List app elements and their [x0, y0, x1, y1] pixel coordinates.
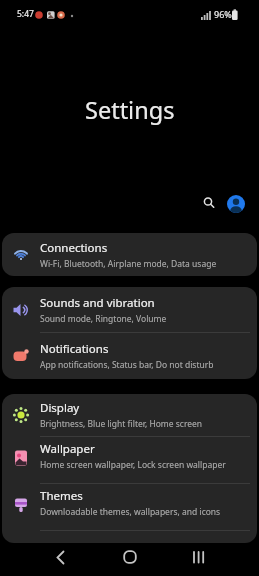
staticText: Notifications [40, 341, 109, 357]
staticText: Brightness, Blue light filter, Home scre… [40, 418, 203, 430]
staticText: App notifications, Status bar, Do not di… [40, 359, 214, 371]
button[interactable]: Sounds and vibration [2, 287, 257, 333]
staticText: Wi-Fi, Bluetooth, Airplane mode, Data us… [40, 258, 217, 270]
button[interactable] [190, 549, 208, 567]
staticText: Downloadable themes, wallpapers, and ico… [40, 506, 221, 518]
staticText: Connections [40, 240, 108, 256]
staticText: 96% [214, 8, 232, 20]
button[interactable]: Wallpaper [2, 436, 257, 483]
staticText: Sounds and vibration [40, 295, 155, 311]
staticText: Home screen wallpaper, Lock screen wallp… [40, 459, 226, 471]
button[interactable]: Display [2, 394, 257, 436]
staticText: 5:47 [17, 8, 34, 20]
button[interactable]: Connections [2, 233, 257, 276]
staticText: Sound mode, Ringtone, Volume [40, 313, 167, 325]
button[interactable] [50, 548, 70, 568]
button[interactable] [198, 192, 218, 212]
staticText: Display [40, 400, 80, 416]
staticText: Settings [85, 94, 175, 126]
staticText: Themes [40, 488, 83, 504]
button[interactable]: Notifications [2, 333, 257, 379]
button[interactable]: Themes [2, 483, 257, 530]
button[interactable] [227, 195, 245, 213]
button[interactable] [122, 549, 138, 565]
staticText: Wallpaper [40, 441, 95, 457]
